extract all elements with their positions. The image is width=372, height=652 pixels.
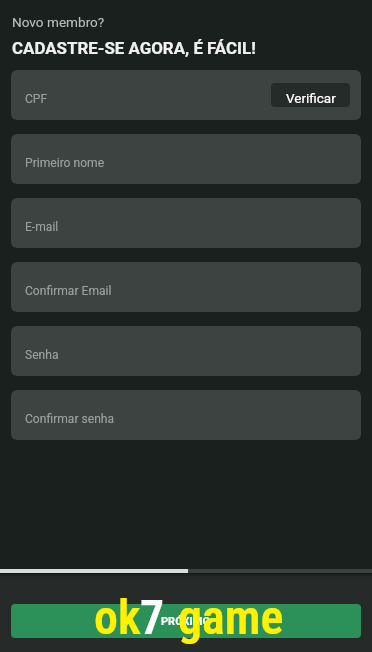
button[interactable]: Senha (11, 326, 361, 376)
staticText: Novo membro? (12, 14, 105, 30)
staticText: Primeiro nome (25, 156, 105, 170)
button[interactable]: Confirmar senha (11, 390, 361, 440)
staticText: Verificar (286, 90, 336, 106)
staticText: Confirmar Email (25, 284, 112, 298)
button[interactable]: CPF (11, 70, 361, 120)
button[interactable]: Primeiro nome (11, 134, 361, 184)
button[interactable]: PRÓXIMO (11, 604, 361, 638)
button[interactable]: E-mail (11, 198, 361, 248)
staticText: CPF (25, 92, 48, 106)
staticText: 7 (140, 589, 165, 645)
staticText: game (178, 589, 284, 645)
staticText: PRÓXIMO (161, 615, 211, 628)
staticText: Senha (25, 348, 59, 362)
button[interactable]: Confirmar Email (11, 262, 361, 312)
button[interactable]: Verificar CPF (271, 83, 350, 107)
staticText: E-mail (25, 220, 59, 234)
staticText: Confirmar senha (25, 412, 115, 426)
staticText: ok (94, 589, 141, 645)
staticText: CADASTRE-SE AGORA, É FÁCIL! (12, 38, 256, 58)
